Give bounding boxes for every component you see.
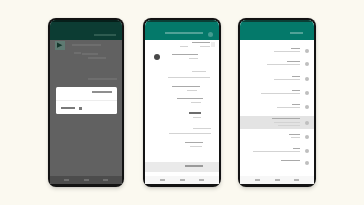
button[interactable]	[240, 100, 314, 114]
button[interactable]	[240, 57, 314, 71]
button[interactable]	[145, 20, 219, 40]
button[interactable]	[145, 162, 219, 172]
button[interactable]	[240, 144, 314, 158]
button[interactable]	[240, 116, 314, 129]
button[interactable]	[240, 44, 314, 58]
button[interactable]	[240, 86, 314, 100]
button[interactable]	[56, 87, 117, 114]
button[interactable]	[240, 156, 314, 170]
button[interactable]	[240, 130, 314, 144]
button[interactable]	[240, 72, 314, 86]
